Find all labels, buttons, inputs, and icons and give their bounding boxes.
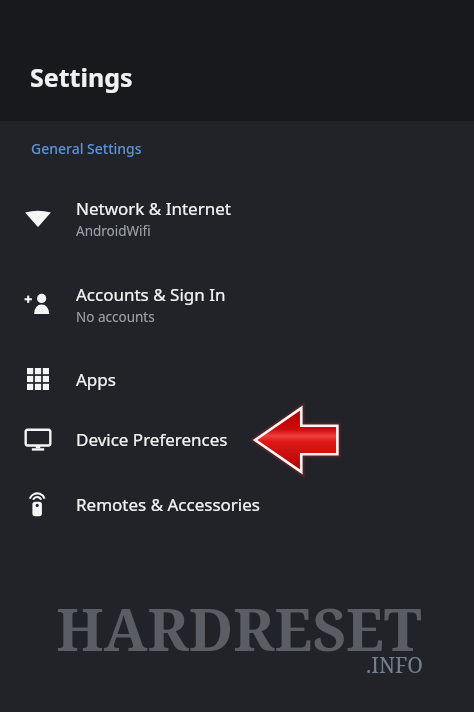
- button[interactable]: Accounts: [0, 276, 474, 332]
- button[interactable]: Apps: [0, 356, 474, 402]
- staticText: HARDRESET: [16, 589, 462, 668]
- other: Device Preferences: [24, 425, 52, 453]
- staticText: Accounts & Sign In: [76, 283, 226, 306]
- other: Accounts: [24, 290, 52, 318]
- button[interactable]: Remotes & Accessories: [0, 481, 474, 527]
- staticText: General Settings: [31, 139, 142, 158]
- button[interactable]: Wi-Fi: [0, 190, 474, 246]
- other: Annotation arrow: [252, 406, 340, 474]
- other: Remotes & Accessories: [24, 490, 52, 518]
- staticText: Settings: [30, 60, 133, 94]
- other: Wi-Fi: [24, 204, 52, 232]
- staticText: Device Preferences: [76, 428, 228, 451]
- button[interactable]: Device Preferences: [0, 416, 474, 462]
- staticText: Apps: [76, 368, 116, 391]
- staticText: Remotes & Accessories: [76, 493, 260, 516]
- staticText: No accounts: [76, 308, 155, 326]
- staticText: Network & Internet: [76, 197, 231, 220]
- staticText: AndroidWifi: [76, 222, 151, 240]
- staticText: .INFO: [366, 651, 423, 680]
- other: Apps: [27, 368, 49, 390]
